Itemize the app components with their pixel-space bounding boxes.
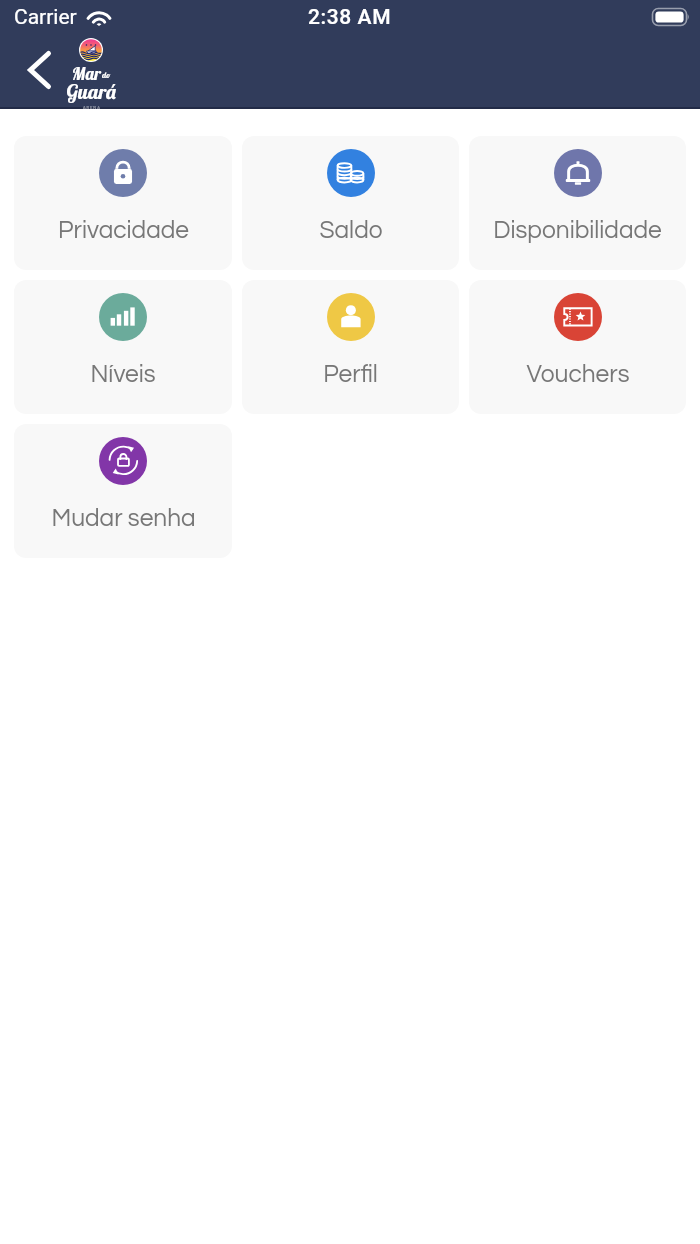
staticText: do	[102, 70, 111, 80]
staticText: Saldo	[319, 218, 383, 243]
staticText: Perfil	[323, 362, 378, 387]
button[interactable]: Saldo	[242, 136, 459, 270]
button[interactable]: Vouchers	[469, 280, 686, 414]
button[interactable]: Disponibilidade	[469, 136, 686, 270]
button[interactable]: Perfil	[242, 280, 459, 414]
button[interactable]: Níveis	[14, 280, 232, 414]
staticText: Carrier	[14, 5, 77, 30]
staticText: Níveis	[90, 362, 156, 387]
staticText: A R E N A	[83, 105, 100, 110]
staticText: Privacidade	[58, 218, 189, 243]
staticText: Vouchers	[526, 362, 630, 387]
button[interactable]: Privacidade	[14, 136, 232, 270]
staticText: Guará	[66, 79, 117, 104]
staticText: Disponibilidade	[493, 218, 662, 243]
staticText: Mar	[72, 63, 101, 84]
staticText: Mudar senha	[51, 506, 196, 531]
staticText: 2:38 AM	[308, 5, 392, 30]
button[interactable]: Mudar senha	[14, 424, 232, 558]
button[interactable]: Back	[11, 42, 67, 98]
